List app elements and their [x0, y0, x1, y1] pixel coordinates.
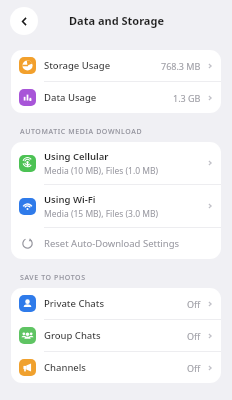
staticText: Media (10 MB), Files (1.0 MB) — [44, 165, 159, 177]
staticText: AUTOMATIC MEDIA DOWNLOAD — [20, 127, 232, 137]
button[interactable]: Private Chats — [11, 288, 221, 319]
button[interactable]: Using Wi-Fi — [11, 185, 221, 227]
staticText: Off — [187, 298, 201, 310]
staticText: Group Chats — [44, 329, 187, 342]
button[interactable]: Back — [10, 7, 38, 35]
staticText: Off — [187, 362, 201, 374]
button[interactable]: Reset Auto-Download Settings — [11, 228, 221, 259]
staticText: Storage Usage — [44, 59, 161, 72]
button[interactable]: Data Usage — [11, 82, 221, 113]
button[interactable]: Storage Usage — [11, 50, 221, 81]
button[interactable]: Using Cellular — [11, 142, 221, 184]
button[interactable]: Channels — [11, 352, 221, 383]
staticText: Data Usage — [44, 91, 173, 104]
staticText: Data and Storage — [69, 13, 164, 28]
button[interactable]: Group Chats — [11, 320, 221, 351]
staticText: SAVE TO PHOTOS — [20, 273, 232, 283]
staticText: Using Wi-Fi — [44, 193, 96, 206]
staticText: Off — [187, 330, 201, 342]
staticText: 1.3 GB — [173, 92, 201, 104]
staticText: Channels — [44, 361, 187, 374]
staticText: 768.3 MB — [161, 60, 201, 72]
staticText: Using Cellular — [44, 150, 109, 163]
staticText: Reset Auto-Download Settings — [44, 237, 180, 250]
staticText: Private Chats — [44, 297, 187, 310]
staticText: Media (15 MB), Files (3.0 MB) — [44, 208, 159, 220]
